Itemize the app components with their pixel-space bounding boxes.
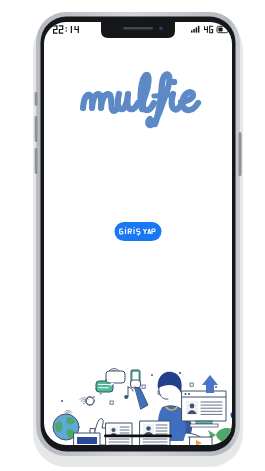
button[interactable]: GİRİŞ YAP [115, 222, 162, 241]
